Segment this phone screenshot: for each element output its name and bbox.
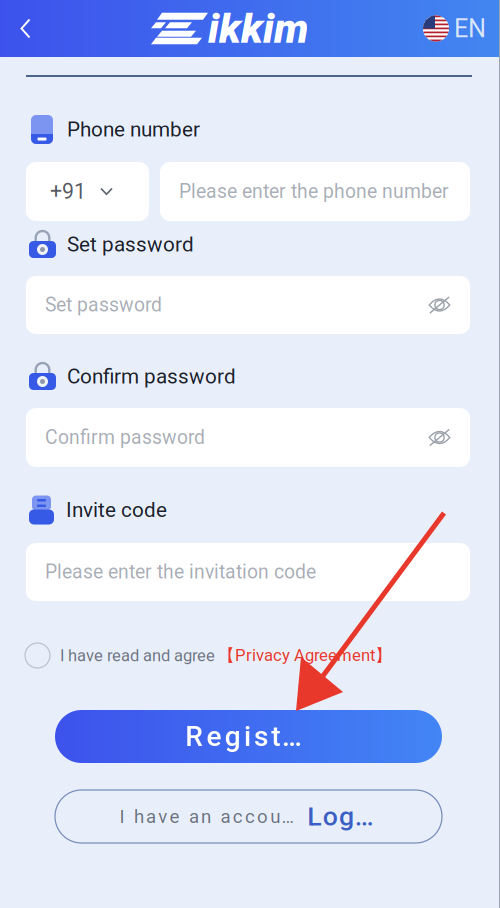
button[interactable]: Back <box>0 0 47 57</box>
button[interactable]: Language English <box>413 0 500 57</box>
staticText: Invite code <box>66 498 167 522</box>
staticText: Please enter the phone number <box>179 180 449 203</box>
button[interactable]: I have read and agree <box>0 643 500 668</box>
staticText: 【Privacy Agreement】 <box>218 645 392 666</box>
staticText: Login <box>307 801 377 832</box>
staticText: Set password <box>67 232 194 257</box>
staticText: Confirm password <box>45 426 205 449</box>
staticText: I have an account <box>119 806 296 827</box>
staticText: Phone number <box>67 117 200 142</box>
button[interactable]: Country code +91 <box>26 162 149 221</box>
staticText: Register <box>185 720 312 753</box>
staticText: Please enter the invitation code <box>45 561 316 583</box>
staticText: Confirm password <box>67 364 236 389</box>
staticText: EN <box>454 14 486 43</box>
staticText: +91 <box>50 179 86 204</box>
staticText: ikkim <box>208 4 309 53</box>
button[interactable]: I have an account <box>0 790 500 843</box>
button[interactable]: Register <box>0 710 500 763</box>
staticText: Set password <box>45 294 162 316</box>
staticText: I have read and agree <box>60 646 215 665</box>
